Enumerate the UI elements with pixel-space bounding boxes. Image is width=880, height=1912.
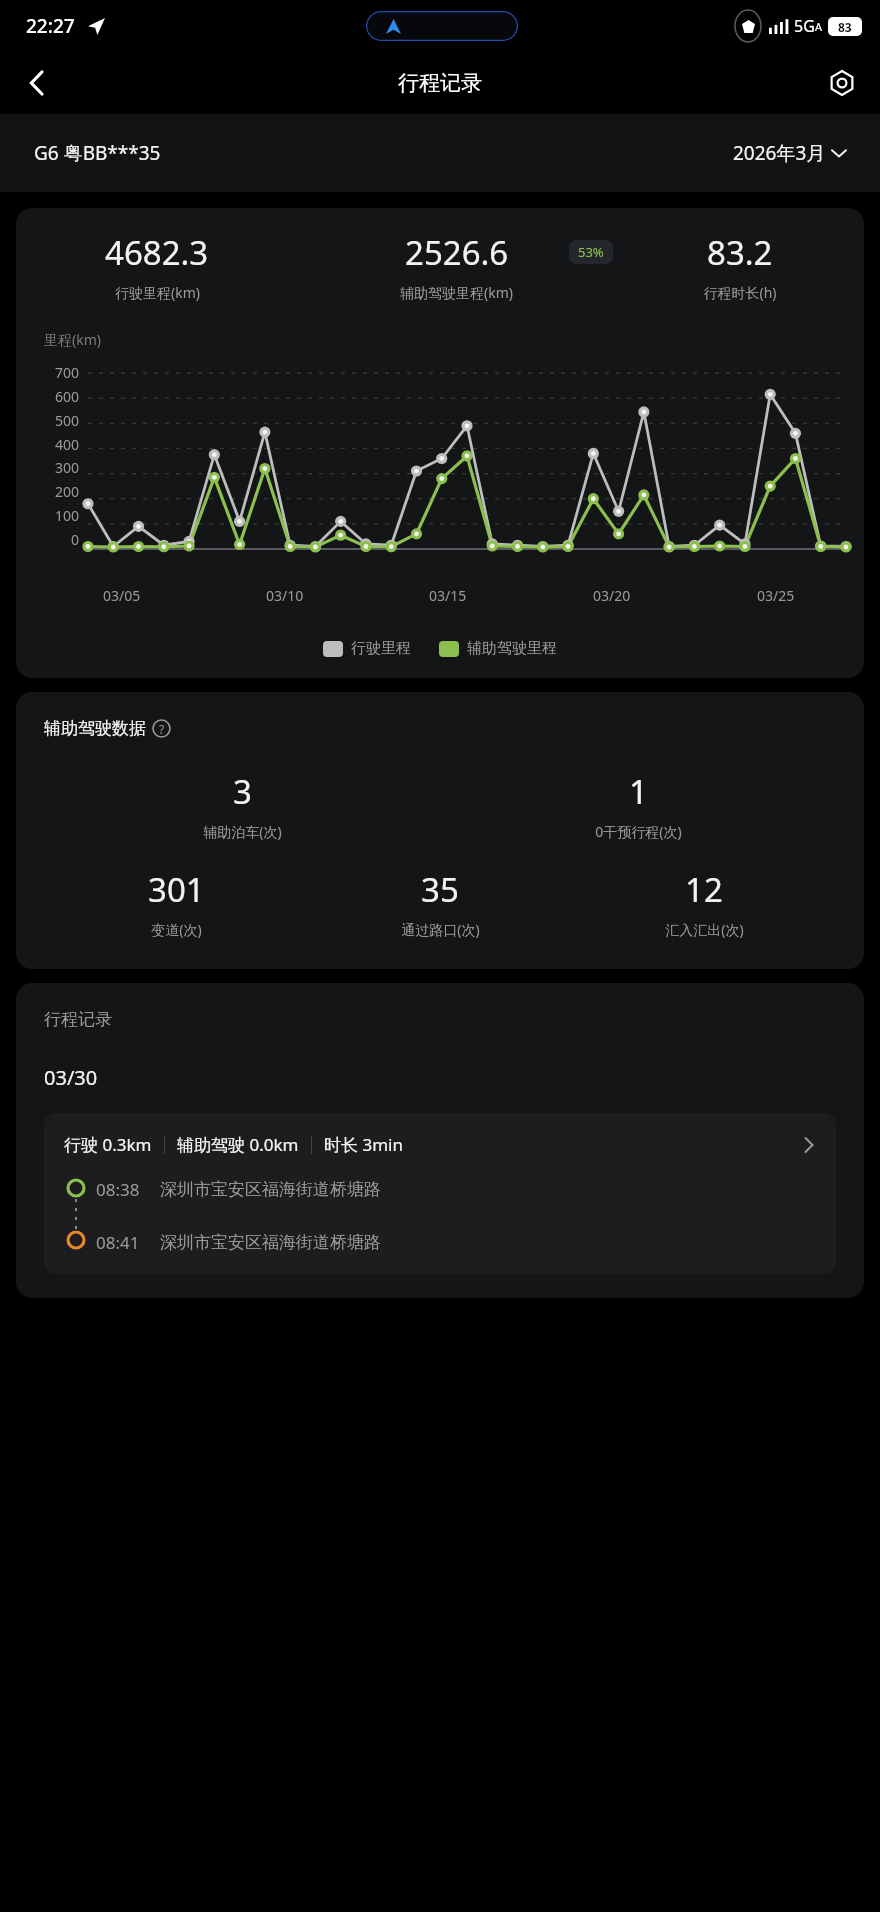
staticText: 深圳市宝安区福海街道桥塘路 — [160, 1179, 381, 1200]
staticText: 12 — [685, 867, 723, 912]
staticText: 100 — [55, 506, 80, 525]
staticText: 400 — [55, 435, 80, 454]
staticText: 301 — [148, 867, 205, 912]
button[interactable]: 行驶 0.3km — [44, 1113, 836, 1274]
staticText: 53% — [578, 243, 604, 261]
staticText: 83 — [838, 19, 852, 35]
staticText: 0干预行程(次) — [595, 822, 682, 841]
staticText: 行驶 0.3km — [64, 1133, 152, 1156]
staticText: 里程(km) — [44, 330, 101, 349]
staticText: A — [815, 19, 823, 34]
staticText: 03/10 — [266, 586, 304, 605]
staticText: 200 — [55, 482, 80, 501]
staticText: 03/20 — [593, 586, 631, 605]
staticText: 行驶里程 — [351, 639, 411, 658]
staticText: 08:38 — [96, 1178, 140, 1201]
staticText: 03/30 — [44, 1064, 98, 1091]
button[interactable]: Settings — [818, 59, 866, 107]
staticText: 300 — [55, 458, 80, 477]
staticText: 行程时长(h) — [703, 283, 777, 302]
staticText: 03/15 — [429, 586, 467, 605]
staticText: 辅助泊车(次) — [203, 822, 282, 841]
staticText: 行驶里程(km) — [115, 283, 200, 302]
button[interactable]: Help — [152, 719, 171, 738]
button[interactable]: 2026年3月 — [733, 140, 846, 166]
staticText: 35 — [421, 867, 459, 912]
staticText: 1 — [629, 769, 648, 814]
staticText: 汇入汇出(次) — [665, 920, 744, 939]
staticText: 辅助驾驶 0.0km — [177, 1133, 299, 1156]
staticText: 时长 3min — [324, 1133, 403, 1156]
staticText: 行程记录 — [398, 70, 482, 96]
staticText: 深圳市宝安区福海街道桥塘路 — [160, 1232, 381, 1253]
staticText: 2526.6 — [405, 230, 509, 275]
staticText: 22:27 — [26, 13, 75, 39]
staticText: 行程记录 — [44, 1009, 112, 1030]
staticText: 5G — [794, 15, 815, 37]
staticText: 通过路口(次) — [401, 920, 480, 939]
staticText: 变道(次) — [151, 920, 202, 939]
staticText: 0 — [71, 530, 80, 549]
staticText: 700 — [55, 363, 80, 382]
staticText: ? — [159, 721, 165, 737]
staticText: 辅助驾驶里程(km) — [400, 283, 513, 302]
button[interactable]: Back — [14, 59, 62, 107]
staticText: 500 — [55, 411, 80, 430]
staticText: 辅助驾驶数据 — [44, 718, 146, 739]
staticText: 83.2 — [707, 230, 773, 275]
staticText: G6 粤BB***35 — [34, 140, 161, 166]
staticText: 08:41 — [96, 1231, 140, 1254]
staticText: 2026年3月 — [733, 140, 826, 166]
staticText: 辅助驾驶里程 — [467, 639, 557, 658]
staticText: 03/25 — [757, 586, 795, 605]
staticText: 03/05 — [103, 586, 141, 605]
staticText: 3 — [233, 769, 252, 814]
staticText: 4682.3 — [105, 230, 209, 275]
staticText: 600 — [55, 387, 80, 406]
